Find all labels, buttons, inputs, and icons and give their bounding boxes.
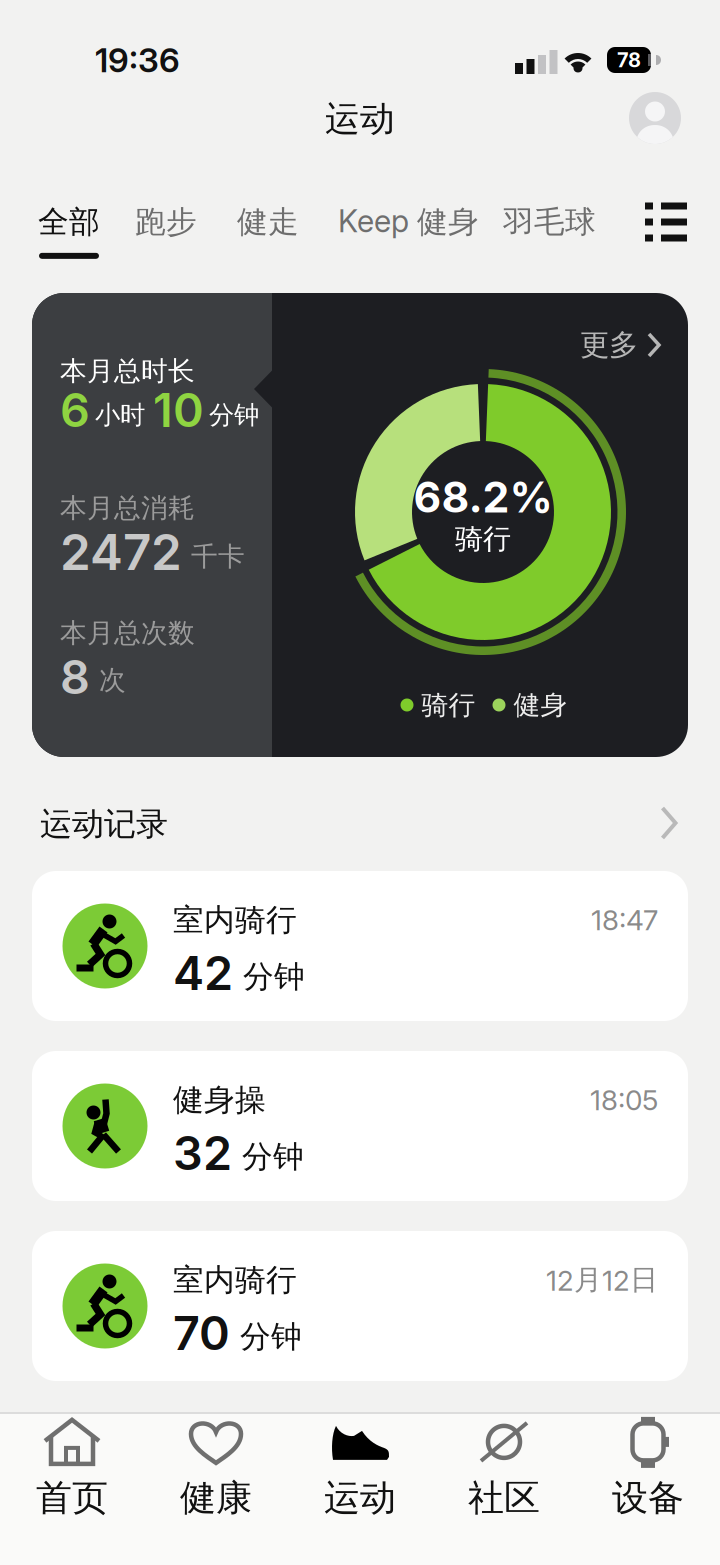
button[interactable]: 首页 — [0, 1416, 144, 1520]
button[interactable]: 健身操 — [32, 1051, 688, 1201]
staticText: 运动 — [325, 98, 395, 140]
staticText: 健康 — [180, 1476, 252, 1520]
staticText: 70 — [173, 1305, 230, 1361]
button[interactable]: 羽毛球 — [503, 203, 596, 241]
button[interactable]: Keep 健身 — [338, 203, 479, 241]
staticText: 2472 — [60, 523, 182, 581]
staticText: 18:47 — [591, 903, 658, 936]
staticText: 分钟 — [243, 958, 305, 996]
staticText: 分钟 — [240, 1318, 302, 1356]
button[interactable]: 本月总时长 — [32, 293, 688, 757]
staticText: 68.2% — [413, 472, 552, 522]
staticText: 健走 — [237, 203, 299, 241]
button[interactable]: 运动记录 — [32, 794, 688, 854]
staticText: 32 — [173, 1125, 232, 1181]
button[interactable]: 社区 — [432, 1416, 576, 1520]
staticText: 骑行 — [421, 689, 475, 721]
staticText: 分钟 — [242, 1138, 304, 1176]
button[interactable]: 运动 — [288, 1416, 432, 1520]
staticText: 6 — [60, 382, 90, 438]
staticText: 首页 — [36, 1476, 108, 1520]
button[interactable]: 健走 — [237, 203, 299, 241]
staticText: 千卡 — [191, 540, 245, 573]
staticText: 跑步 — [135, 203, 197, 241]
button[interactable]: 跑步 — [135, 203, 197, 241]
staticText: 运动 — [324, 1476, 396, 1520]
staticText: 本月总消耗 — [60, 492, 195, 524]
staticText: 18:05 — [590, 1083, 658, 1116]
staticText: 10 — [153, 382, 204, 438]
button[interactable]: 健康 — [144, 1416, 288, 1520]
staticText: 本月总时长 — [60, 355, 195, 387]
button[interactable]: 室内骑行 — [32, 1231, 688, 1381]
staticText: 78 — [617, 48, 641, 72]
staticText: 健身 — [513, 689, 567, 721]
staticText: 社区 — [468, 1476, 540, 1520]
staticText: 分钟 — [209, 399, 259, 430]
staticText: 骑行 — [455, 522, 511, 556]
staticText: Keep 健身 — [338, 203, 479, 241]
staticText: 室内骑行 — [173, 901, 297, 939]
staticText: 19:36 — [95, 40, 180, 80]
staticText: 小时 — [95, 399, 145, 430]
button[interactable]: 室内骑行 — [32, 871, 688, 1021]
button[interactable]: 设备 — [576, 1416, 720, 1520]
staticText: 8 — [60, 649, 90, 705]
staticText: 更多 — [580, 327, 638, 363]
button[interactable] — [645, 202, 687, 241]
button[interactable] — [629, 92, 681, 144]
staticText: 本月总次数 — [60, 617, 195, 649]
staticText: 室内骑行 — [173, 1261, 297, 1299]
staticText: 42 — [173, 945, 233, 1001]
staticText: 健身操 — [173, 1081, 266, 1119]
staticText: 运动记录 — [40, 804, 168, 844]
staticText: 次 — [99, 664, 126, 697]
staticText: 设备 — [612, 1476, 684, 1520]
staticText: 全部 — [38, 203, 100, 241]
button[interactable]: 全部 — [38, 203, 100, 259]
staticText: 羽毛球 — [503, 203, 596, 241]
staticText: 12月12日 — [546, 1263, 658, 1297]
